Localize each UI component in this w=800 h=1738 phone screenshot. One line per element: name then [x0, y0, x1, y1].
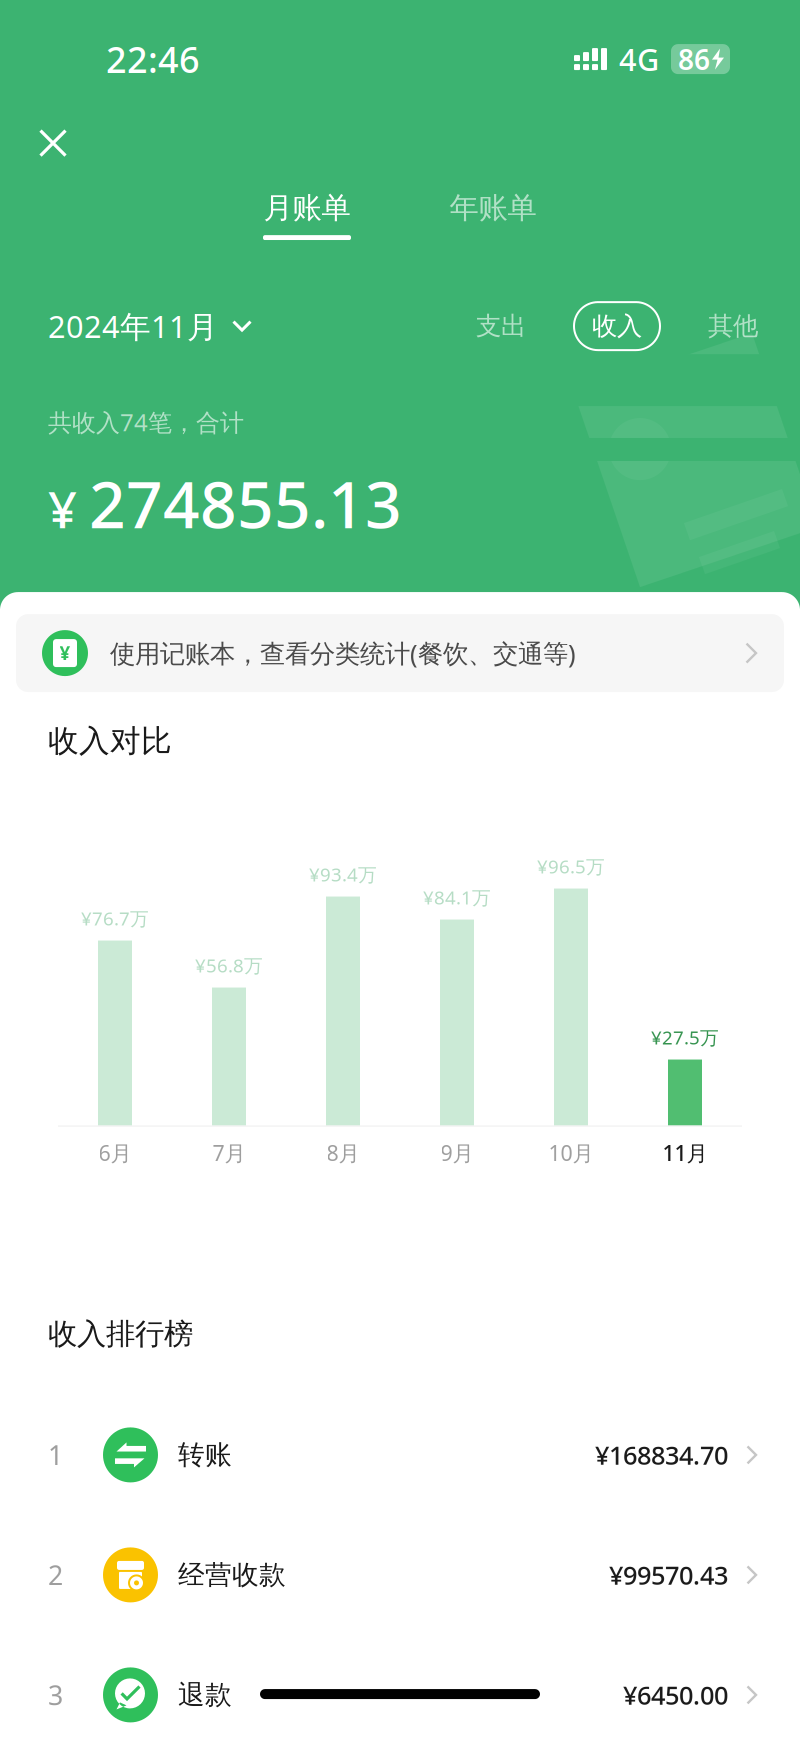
staticText: 2024年11月 — [48, 306, 218, 346]
button[interactable]: 年账单 — [400, 190, 586, 240]
staticText: ¥ — [59, 641, 70, 665]
staticText: 月账单 — [263, 190, 350, 226]
staticText: 其他 — [708, 311, 758, 342]
button[interactable]: 其他 — [704, 300, 762, 352]
staticText: ¥56.8万 — [195, 953, 263, 978]
staticText: 86 — [678, 40, 710, 78]
staticText: 共收入74笔，合计 — [48, 406, 244, 438]
button[interactable]: 2 — [0, 1515, 800, 1635]
staticText: 退款 — [178, 1678, 232, 1711]
staticText: 收入排行榜 — [48, 1316, 193, 1352]
staticText: ¥27.5万 — [651, 1025, 719, 1050]
staticText: 10月 — [548, 1138, 593, 1167]
button[interactable]: 1 — [0, 1395, 800, 1515]
staticText: 7月 — [212, 1138, 245, 1167]
staticText: 经营收款 — [178, 1558, 286, 1591]
button[interactable]: 3 — [0, 1635, 800, 1738]
staticText: ¥6450.00 — [623, 1678, 728, 1712]
staticText: 4G — [619, 39, 659, 79]
staticText: 274855.13 — [89, 461, 402, 546]
staticText: 支出 — [476, 311, 526, 342]
staticText: 1 — [48, 1437, 63, 1473]
staticText: ¥ — [48, 475, 77, 542]
staticText: 9月 — [440, 1138, 473, 1167]
staticText: 6月 — [98, 1138, 131, 1167]
button[interactable]: 支出 — [472, 300, 530, 352]
staticText: 8月 — [326, 1138, 359, 1167]
button[interactable]: ¥ — [16, 614, 784, 692]
staticText: 11月 — [662, 1138, 707, 1167]
button[interactable]: Close — [16, 106, 90, 180]
staticText: ¥99570.43 — [609, 1558, 728, 1592]
staticText: 使用记账本，查看分类统计(餐饮、交通等) — [110, 636, 576, 670]
staticText: ¥96.5万 — [537, 854, 605, 879]
staticText: ¥168834.70 — [595, 1438, 728, 1472]
staticText: 22:46 — [106, 35, 200, 83]
staticText: 收入 — [592, 311, 642, 342]
staticText: ¥93.4万 — [309, 862, 377, 887]
button[interactable]: 收入 — [574, 302, 660, 350]
staticText: 2 — [48, 1557, 63, 1593]
button[interactable]: 2024年11月 — [48, 298, 252, 354]
staticText: 收入对比 — [48, 722, 172, 760]
staticText: 转账 — [178, 1438, 232, 1471]
staticText: 年账单 — [449, 190, 536, 226]
staticText: ¥76.7万 — [81, 906, 149, 931]
staticText: 3 — [48, 1677, 63, 1713]
button[interactable]: 月账单 — [214, 190, 400, 240]
staticText: ¥84.1万 — [423, 885, 491, 910]
